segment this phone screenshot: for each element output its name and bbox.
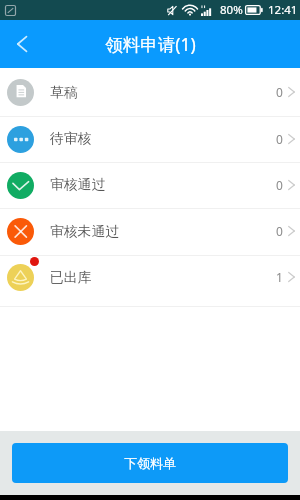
button[interactable]: 待审核 bbox=[0, 117, 300, 162]
button[interactable]: 已出库 bbox=[0, 256, 300, 306]
button[interactable]: 审核未通过 bbox=[0, 209, 300, 255]
staticText: 草稿 bbox=[50, 84, 78, 101]
staticText: 0 bbox=[276, 131, 283, 147]
staticText: 审核通过 bbox=[50, 176, 106, 193]
staticText: 80% bbox=[220, 2, 243, 18]
staticText: 12:41 bbox=[268, 2, 298, 18]
staticText: 审核未通过 bbox=[50, 223, 119, 240]
staticText: 已出库 bbox=[50, 269, 92, 286]
staticText: 下领料单 bbox=[124, 455, 176, 471]
button[interactable]: 草稿 bbox=[0, 68, 300, 116]
button[interactable]: 下领料单 bbox=[12, 443, 288, 483]
staticText: 领料申请(1) bbox=[105, 32, 196, 56]
staticText: 1 bbox=[276, 269, 283, 285]
staticText: 待审核 bbox=[50, 130, 92, 147]
staticText: 0 bbox=[276, 177, 283, 193]
button[interactable]: Back bbox=[0, 20, 43, 68]
button[interactable]: 审核通过 bbox=[0, 163, 300, 208]
staticText: 0 bbox=[276, 84, 283, 100]
staticText: 0 bbox=[276, 223, 283, 239]
